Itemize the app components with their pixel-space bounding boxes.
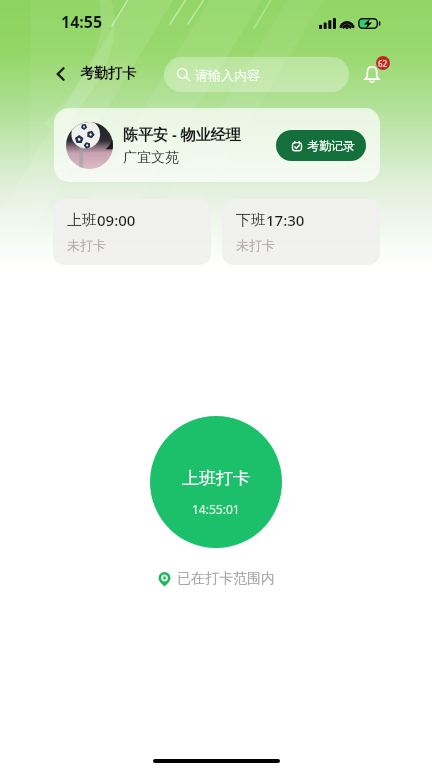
staticText: 已在打卡范围内 [177,570,275,588]
staticText: 14:55:01 [192,501,240,517]
staticText: 陈平安 - 物业经理 [123,124,241,144]
button[interactable]: Back [52,65,70,83]
staticText: 62 [378,58,388,69]
staticText: 考勤记录 [307,138,355,153]
staticText: 14:55 [61,11,103,33]
staticText: 考勤打卡 [80,65,136,83]
button[interactable]: 考勤记录 [276,130,366,161]
staticText: 上班打卡 [182,468,250,489]
button[interactable]: 陈平安 - 物业经理 [54,108,380,182]
staticText: 请输入内容 [195,67,260,83]
button[interactable]: 下班 [222,199,380,265]
staticText: 17:30 [266,210,305,230]
staticText: 未打卡 [236,237,275,253]
button[interactable]: 请输入内容 [164,57,349,92]
staticText: 09:00 [97,210,136,230]
button[interactable]: 上班 [53,199,211,265]
button[interactable]: Notifications [359,61,385,87]
button[interactable]: 上班打卡 [150,416,282,548]
staticText: 下班 [236,211,266,230]
staticText: 广宜文苑 [123,149,179,167]
staticText: 未打卡 [67,237,106,253]
staticText: 上班 [67,211,97,230]
